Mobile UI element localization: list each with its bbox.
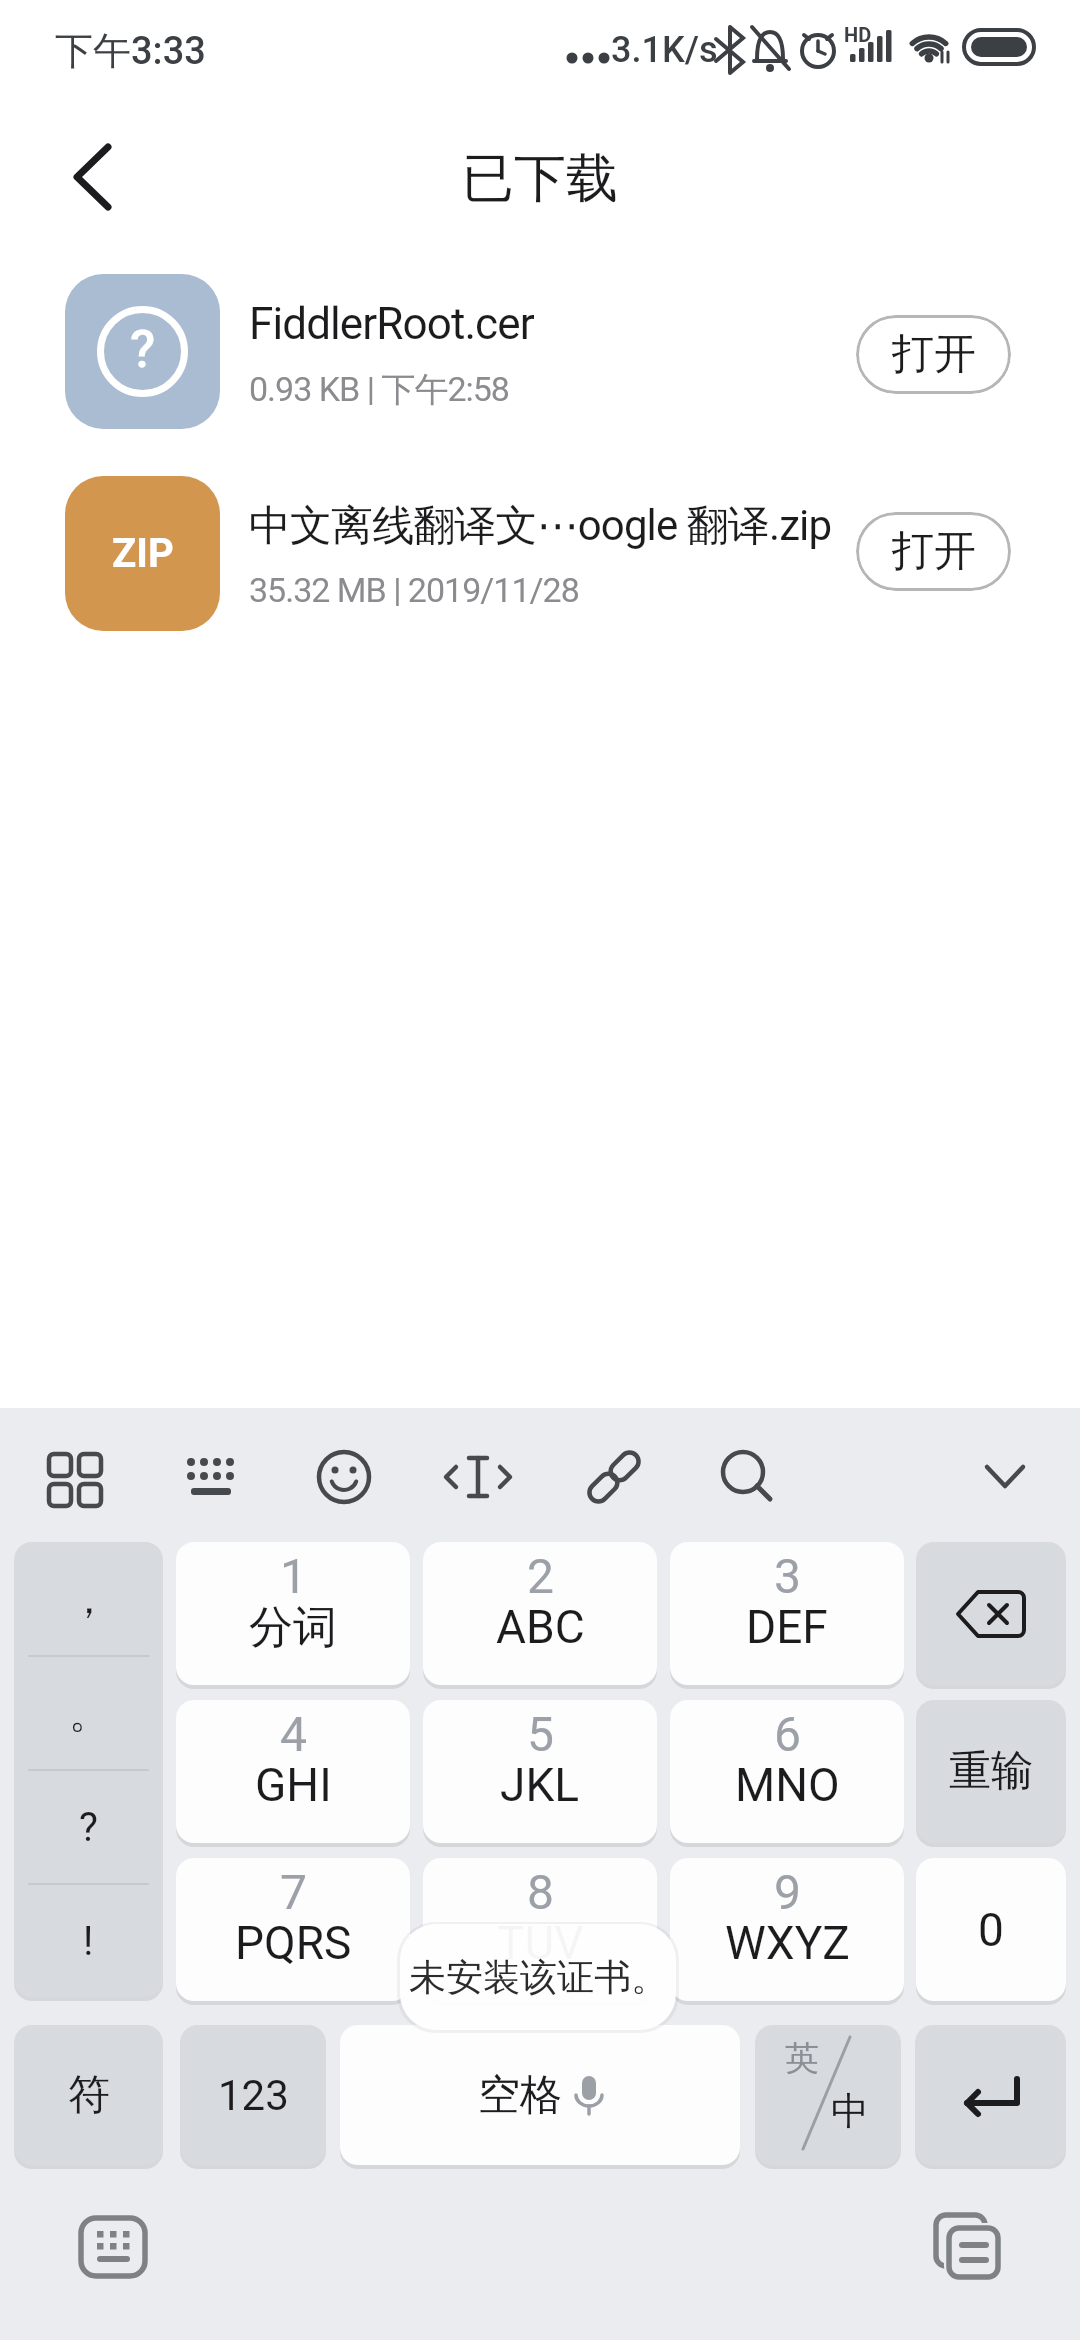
button[interactable]: 打开 <box>856 512 1011 591</box>
staticText: DEF <box>746 1600 828 1654</box>
staticText: 5 <box>527 1706 554 1762</box>
staticText: 中文离线翻译文⋯oogle 翻译.zip <box>249 500 832 553</box>
staticText: MNO <box>735 1758 840 1812</box>
button[interactable]: ? <box>65 274 220 429</box>
button[interactable]: 重输 <box>916 1700 1066 1843</box>
staticText: WXYZ <box>725 1916 850 1970</box>
button[interactable]: 打开 <box>856 315 1011 394</box>
staticText: 英 <box>785 2037 819 2080</box>
staticText: 。 <box>69 1688 109 1738</box>
button[interactable] <box>70 2206 156 2288</box>
button[interactable]: 8 <box>423 1858 657 2001</box>
staticText: 下午3:33 <box>55 27 206 75</box>
staticText: 打开 <box>892 525 976 578</box>
staticText: 2 <box>527 1548 554 1604</box>
button[interactable] <box>915 2025 1066 2165</box>
staticText: FiddlerRoot.cer <box>249 298 534 350</box>
staticText: 6 <box>774 1706 801 1762</box>
button[interactable]: ZIP <box>65 476 220 631</box>
staticText: 0.93 KB | 下午2:58 <box>249 368 509 411</box>
staticText: 已下载 <box>462 146 618 212</box>
staticText: GHI <box>255 1758 332 1812</box>
button[interactable]: 英 <box>755 2025 901 2165</box>
staticText: 4 <box>280 1706 307 1762</box>
button[interactable]: 9 <box>670 1858 904 2001</box>
staticText: 9 <box>774 1864 801 1920</box>
button[interactable]: 0 <box>916 1858 1066 2001</box>
button[interactable]: ， <box>14 1542 163 1997</box>
staticText: ? <box>130 319 156 380</box>
staticText: 123 <box>218 2071 289 2120</box>
button[interactable]: 6 <box>670 1700 904 1843</box>
staticText: 未安装该证书。 <box>409 1954 668 2001</box>
button[interactable] <box>60 130 130 225</box>
staticText: 符 <box>68 2069 110 2122</box>
staticText: ? <box>79 1804 98 1851</box>
button[interactable]: 2 <box>423 1542 657 1685</box>
staticText: ZIP <box>112 530 174 577</box>
staticText: 1 <box>280 1548 307 1604</box>
button[interactable]: 符 <box>14 2025 163 2165</box>
button[interactable]: 7 <box>176 1858 410 2001</box>
button[interactable]: 5 <box>423 1700 657 1843</box>
button[interactable] <box>916 1542 1066 1685</box>
button[interactable] <box>928 2206 1008 2286</box>
staticText: 中 <box>831 2087 869 2135</box>
staticText: 打开 <box>892 328 976 381</box>
button[interactable]: 空格 <box>340 2025 740 2165</box>
button[interactable]: 123 <box>180 2025 326 2165</box>
button[interactable]: 3 <box>670 1542 904 1685</box>
staticText: 8 <box>527 1864 554 1920</box>
staticText: ! <box>83 1918 94 1965</box>
staticText: ， <box>69 1574 109 1624</box>
staticText: 3.1K/s <box>611 29 718 71</box>
staticText: 空格 <box>478 2069 562 2122</box>
staticText: JKL <box>500 1758 580 1812</box>
staticText: 7 <box>280 1864 307 1920</box>
staticText: 0 <box>978 1903 1004 1957</box>
button[interactable]: 1 <box>176 1542 410 1685</box>
staticText: HD <box>844 23 872 46</box>
staticText: 35.32 MB | 2019/11/28 <box>249 570 579 610</box>
staticText: 重输 <box>949 1745 1033 1798</box>
button[interactable]: 4 <box>176 1700 410 1843</box>
staticText: PQRS <box>235 1916 352 1970</box>
staticText: 分词 <box>249 1600 337 1655</box>
staticText: ABC <box>496 1600 585 1654</box>
staticText: TUV <box>497 1916 584 1970</box>
staticText: 3 <box>774 1548 801 1604</box>
